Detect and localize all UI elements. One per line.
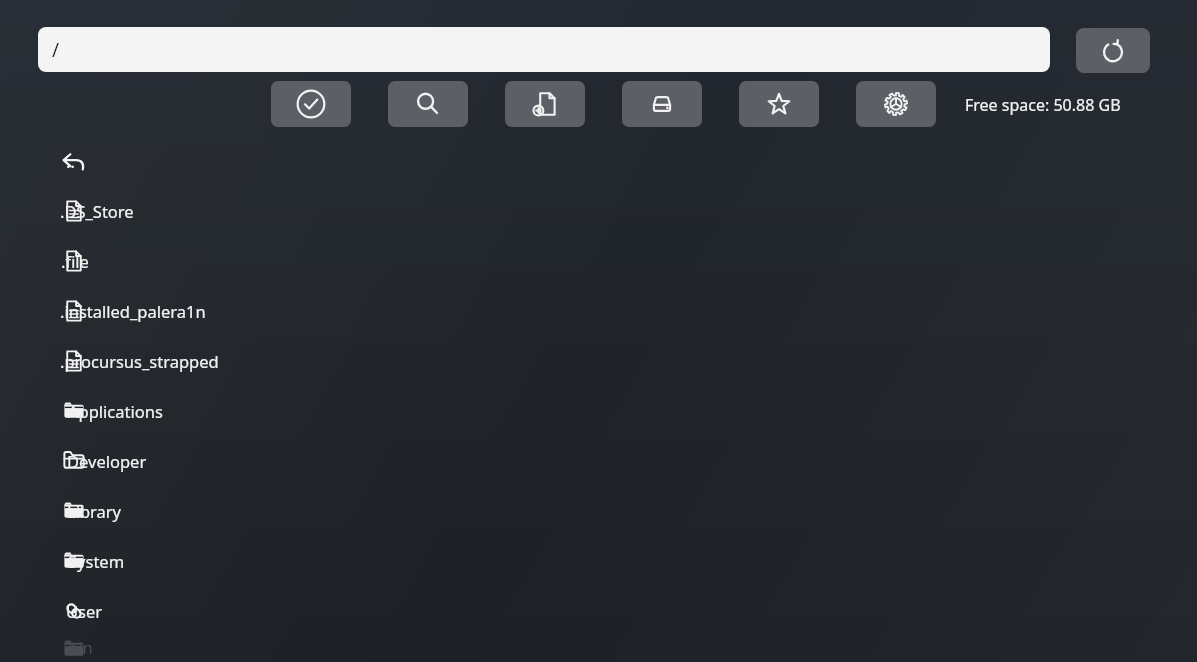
button[interactable]: Search: [388, 81, 468, 127]
button[interactable]: .DS_Store: [0, 186, 1197, 236]
button[interactable]: /: [38, 27, 1050, 72]
staticText: .file: [61, 250, 89, 272]
staticText: Developer: [67, 450, 147, 472]
button[interactable]: Library: [0, 486, 1197, 536]
button[interactable]: Refresh: [1076, 28, 1150, 73]
staticText: Applications: [68, 400, 163, 422]
staticText: .installed_palera1n: [60, 300, 206, 322]
staticText: ..: [66, 150, 75, 172]
staticText: /: [52, 37, 60, 63]
button[interactable]: Select: [271, 81, 351, 127]
button[interactable]: .procursus_strapped: [0, 336, 1197, 386]
button[interactable]: .file: [0, 236, 1197, 286]
button[interactable]: System: [0, 536, 1197, 586]
button[interactable]: New file: [505, 81, 585, 127]
staticText: Library: [67, 500, 122, 522]
button[interactable]: Developer: [0, 436, 1197, 486]
staticText: bin: [68, 636, 93, 658]
button[interactable]: ..: [0, 136, 1197, 186]
staticText: User: [66, 600, 103, 622]
button[interactable]: Settings: [856, 81, 936, 127]
button[interactable]: Storage: [622, 81, 702, 127]
button[interactable]: bin: [0, 636, 1197, 662]
button[interactable]: .installed_palera1n: [0, 286, 1197, 336]
button[interactable]: User: [0, 586, 1197, 636]
staticText: .procursus_strapped: [60, 350, 219, 372]
staticText: Free space: 50.88 GB: [965, 94, 1121, 116]
button[interactable]: Applications: [0, 386, 1197, 436]
staticText: .DS_Store: [60, 200, 134, 222]
staticText: System: [68, 550, 125, 572]
button[interactable]: Favourites: [739, 81, 819, 127]
